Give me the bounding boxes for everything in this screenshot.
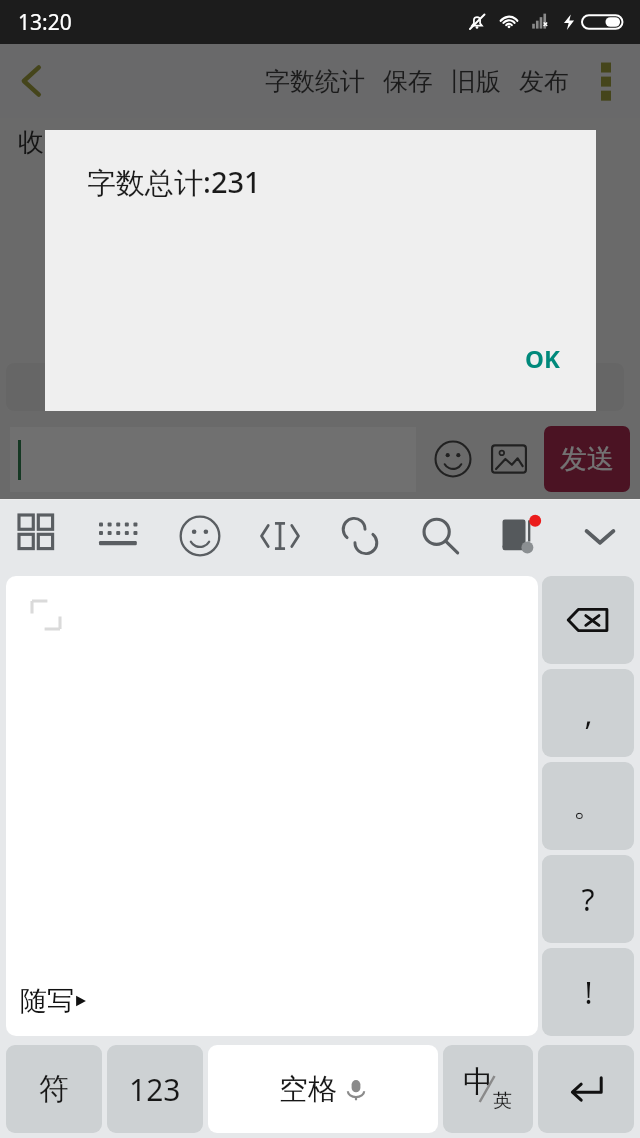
button[interactable]: , [542,669,634,757]
button[interactable]: 符 [6,1045,102,1133]
staticText: 字数统计 [265,66,365,97]
staticText: ! [584,972,593,1013]
staticText: 旧版 [451,66,501,97]
staticText: 中 [463,1063,493,1101]
button[interactable]: More options [580,55,632,107]
staticText: 空格 [279,1071,337,1108]
staticText: 字数总计:231 [87,162,261,202]
button[interactable]: 中 [443,1045,533,1133]
staticText: 123 [129,1069,181,1110]
button[interactable]: Backspace [542,576,634,664]
button[interactable] [10,427,416,492]
button[interactable]: 空格 [208,1045,438,1133]
staticText: 。 [573,787,603,825]
staticText: ? [581,879,595,920]
button[interactable]: Search [400,500,480,572]
button[interactable]: 字数统计 [256,56,374,107]
staticText: 英 [493,1089,512,1113]
button[interactable]: Text edit [240,500,320,572]
button[interactable]: Clipboard [320,500,400,572]
staticText: 发布 [519,66,569,97]
staticText: OK [525,342,560,375]
button[interactable]: Store [480,500,560,572]
staticText: 13:20 [18,8,72,37]
button[interactable]: Handwriting area [6,576,538,1036]
button[interactable]: 随写 [20,984,88,1018]
staticText: , [584,693,593,734]
button[interactable]: Keyboard layouts [0,500,80,572]
staticText: 随写 [20,984,74,1018]
button[interactable]: 发送 [544,426,630,492]
button[interactable] [448,363,532,411]
button[interactable]: OK [509,334,576,383]
button[interactable]: 旧版 [442,56,510,107]
button[interactable]: ? [542,855,634,943]
button[interactable]: ! [542,948,634,1036]
staticText: 保存 [383,66,433,97]
button[interactable]: 123 [107,1045,203,1133]
button[interactable]: Emoji [160,500,240,572]
button[interactable] [6,363,72,411]
button[interactable]: Hide keyboard [560,500,640,572]
staticText: 收 [18,126,44,159]
button[interactable]: Image [486,436,532,482]
staticText: 发送 [560,442,614,476]
button[interactable]: 保存 [374,56,442,107]
button[interactable]: Emoji [430,436,476,482]
staticText: 符 [39,1070,69,1108]
button[interactable] [538,1045,634,1133]
button[interactable]: Keyboard [80,500,160,572]
button[interactable]: 发布 [510,56,578,107]
button[interactable]: 。 [542,762,634,850]
button[interactable] [540,363,624,411]
button[interactable]: Back [0,49,64,113]
